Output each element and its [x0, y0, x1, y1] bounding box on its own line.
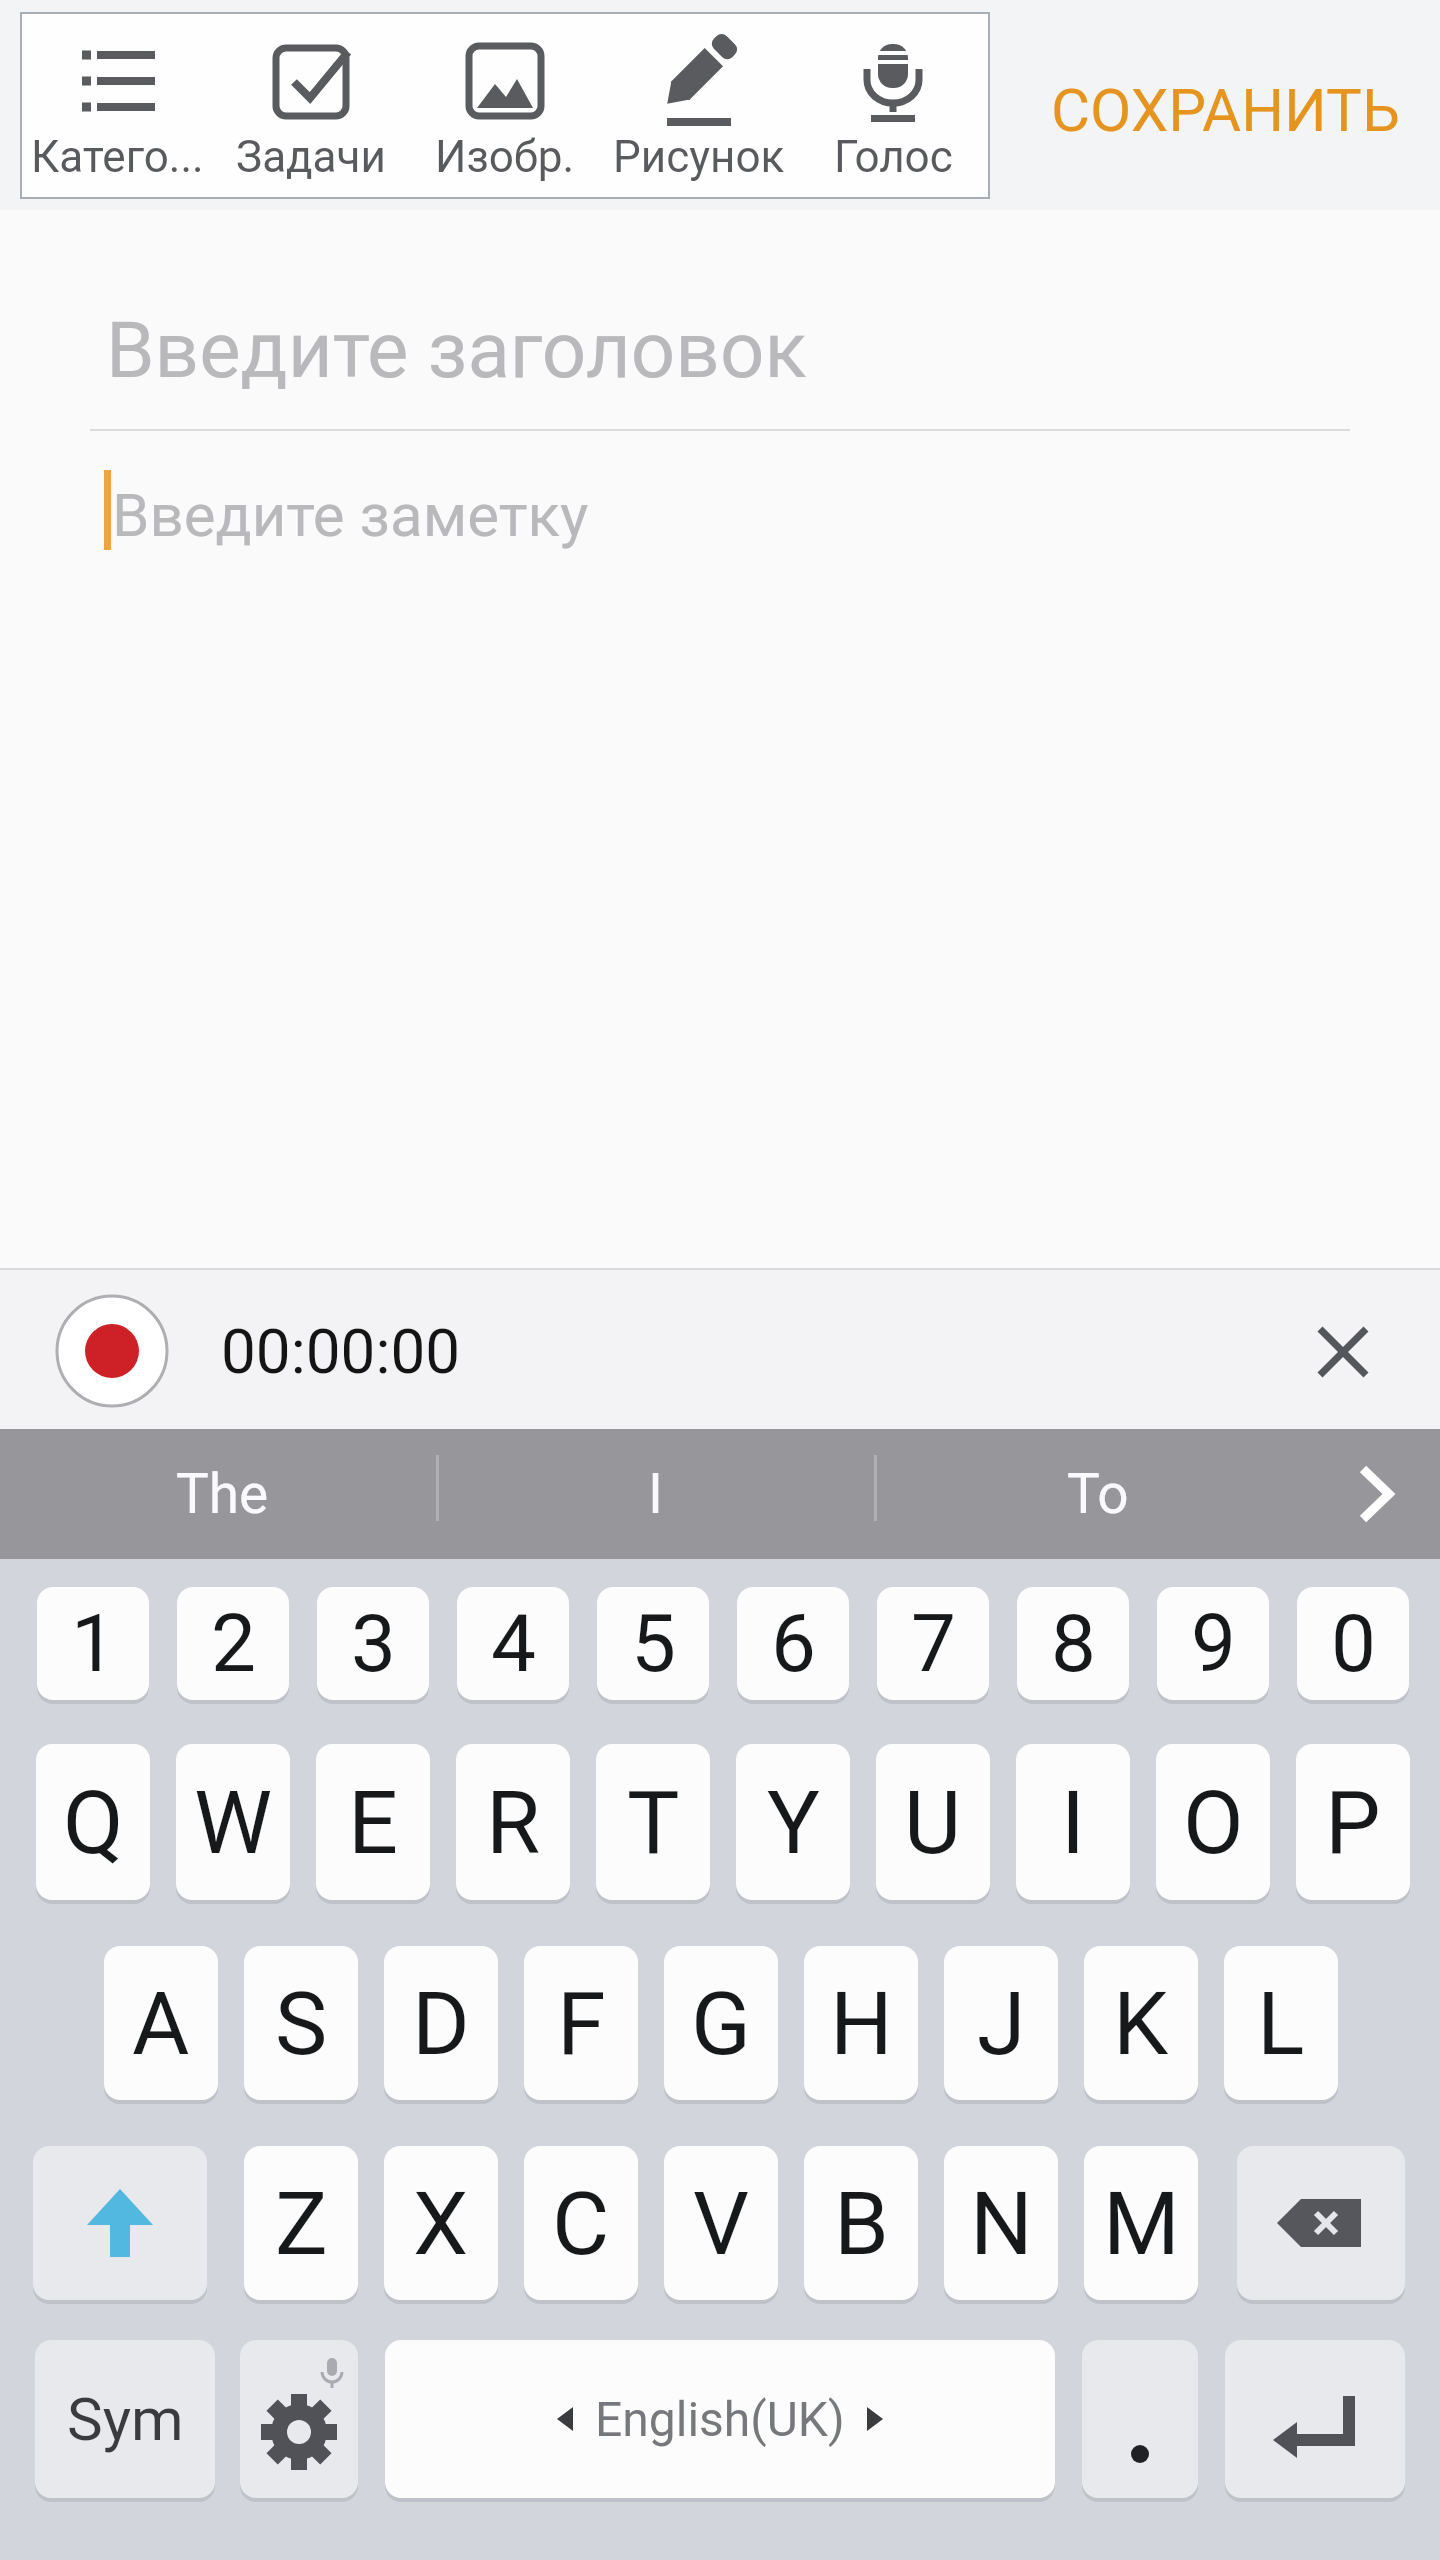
button[interactable] — [1315, 1429, 1440, 1559]
button[interactable]: V — [664, 2146, 778, 2300]
button[interactable]: B — [804, 2146, 918, 2300]
button[interactable]: Sym — [35, 2340, 215, 2498]
button[interactable]: 6 — [737, 1587, 849, 1700]
button[interactable]: 1 — [37, 1587, 149, 1700]
button[interactable]: F — [524, 1946, 638, 2100]
staticText: W — [194, 1771, 273, 1874]
staticText: 0 — [1331, 1597, 1376, 1691]
button[interactable]: 8 — [1017, 1587, 1129, 1700]
button[interactable]: E — [316, 1744, 430, 1900]
staticText: V — [693, 2172, 750, 2275]
staticText: C — [552, 2172, 610, 2275]
button[interactable] — [1082, 2340, 1198, 2498]
button[interactable]: Изобр. — [410, 14, 600, 197]
button[interactable]: U — [876, 1744, 990, 1900]
button[interactable]: 4 — [457, 1587, 569, 1700]
staticText: English(UK) — [595, 2391, 845, 2447]
button[interactable]: P — [1296, 1744, 1410, 1900]
staticText: U — [904, 1771, 962, 1874]
button[interactable]: Катего... — [22, 14, 212, 197]
staticText: X — [413, 2172, 469, 2275]
button[interactable]: R — [456, 1744, 570, 1900]
staticText: The — [176, 1462, 269, 1526]
staticText: L — [1257, 1972, 1305, 2075]
button[interactable]: N — [944, 2146, 1058, 2300]
button[interactable]: K — [1084, 1946, 1198, 2100]
button[interactable]: Z — [244, 2146, 358, 2300]
staticText: Изобр. — [435, 131, 575, 183]
button[interactable]: J — [944, 1946, 1058, 2100]
button[interactable]: СОХРАНИТЬ — [1030, 60, 1420, 160]
button[interactable]: M — [1084, 2146, 1198, 2300]
staticText: Рисунок — [613, 131, 785, 183]
button[interactable]: O — [1156, 1744, 1270, 1900]
button[interactable]: To — [958, 1429, 1238, 1559]
staticText: K — [1113, 1972, 1169, 2075]
button[interactable]: English(UK) — [385, 2340, 1055, 2498]
button[interactable]: W — [176, 1744, 290, 1900]
staticText: I — [648, 1462, 663, 1526]
staticText: H — [830, 1972, 893, 2075]
button[interactable]: 7 — [877, 1587, 989, 1700]
button[interactable]: 0 — [1297, 1587, 1409, 1700]
button[interactable]: G — [664, 1946, 778, 2100]
button[interactable] — [55, 1294, 169, 1408]
staticText: 7 — [911, 1597, 956, 1691]
button[interactable]: Y — [736, 1744, 850, 1900]
staticText: 4 — [491, 1597, 536, 1691]
button[interactable]: H — [804, 1946, 918, 2100]
button[interactable] — [240, 2340, 358, 2498]
button[interactable]: C — [524, 2146, 638, 2300]
staticText: P — [1325, 1771, 1381, 1874]
button[interactable] — [33, 2146, 207, 2300]
staticText: N — [970, 2172, 1033, 2275]
staticText: 3 — [351, 1597, 396, 1691]
staticText: A — [132, 1972, 190, 2075]
button[interactable]: T — [596, 1744, 710, 1900]
button[interactable]: I — [1016, 1744, 1130, 1900]
button[interactable]: A — [104, 1946, 218, 2100]
staticText: R — [486, 1771, 541, 1874]
staticText: J — [977, 1972, 1026, 2075]
staticText: Катего... — [31, 131, 204, 183]
staticText: 9 — [1191, 1597, 1236, 1691]
button[interactable]: Q — [36, 1744, 150, 1900]
staticText: To — [1067, 1462, 1129, 1526]
button[interactable]: L — [1224, 1946, 1338, 2100]
staticText: 8 — [1051, 1597, 1096, 1691]
button[interactable]: 3 — [317, 1587, 429, 1700]
staticText: G — [691, 1972, 751, 2075]
button[interactable]: The — [82, 1429, 362, 1559]
staticText: B — [834, 2172, 889, 2275]
staticText: 5 — [631, 1597, 676, 1691]
button[interactable] — [1225, 2340, 1405, 2498]
button[interactable] — [1237, 2146, 1405, 2300]
staticText: СОХРАНИТЬ — [1051, 75, 1400, 145]
button[interactable]: 9 — [1157, 1587, 1269, 1700]
staticText: Z — [275, 2172, 328, 2275]
staticText: Введите заголовок — [106, 305, 807, 396]
staticText: Q — [63, 1771, 124, 1874]
button[interactable]: 2 — [177, 1587, 289, 1700]
button[interactable]: Задачи — [216, 14, 406, 197]
staticText: O — [1183, 1771, 1244, 1874]
staticText: E — [348, 1771, 399, 1874]
staticText: Y — [767, 1771, 820, 1874]
staticText: F — [557, 1972, 606, 2075]
button[interactable]: 5 — [597, 1587, 709, 1700]
button[interactable]: D — [384, 1946, 498, 2100]
staticText: Голос — [834, 131, 953, 183]
staticText: 1 — [71, 1597, 116, 1691]
button[interactable]: I — [515, 1429, 795, 1559]
button[interactable]: S — [244, 1946, 358, 2100]
button[interactable]: Рисунок — [604, 14, 794, 197]
button[interactable] — [1307, 1316, 1379, 1388]
staticText: Sym — [67, 2384, 184, 2454]
staticText: T — [627, 1771, 680, 1874]
button[interactable]: X — [384, 2146, 498, 2300]
staticText: Введите заметку — [112, 480, 589, 550]
staticText: S — [275, 1972, 328, 2075]
staticText: D — [412, 1972, 470, 2075]
staticText: Задачи — [236, 131, 386, 183]
button[interactable]: Голос — [798, 14, 988, 197]
